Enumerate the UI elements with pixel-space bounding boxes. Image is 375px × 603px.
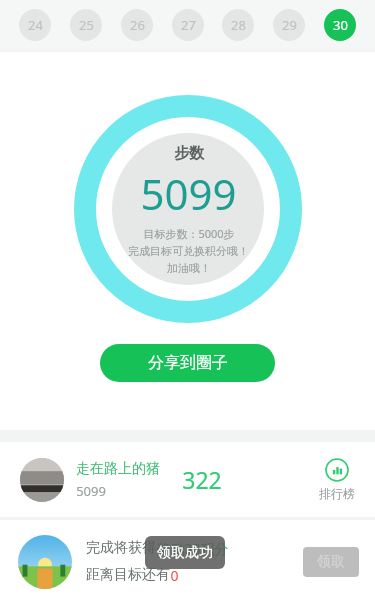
button[interactable]: 领取	[303, 547, 359, 577]
staticText: 5099	[140, 165, 237, 222]
button[interactable]: 26	[121, 9, 153, 41]
button[interactable]: 完成将获得	[0, 520, 375, 603]
button[interactable]: 29	[273, 9, 305, 41]
staticText: 26	[130, 16, 145, 34]
button[interactable]: 分享到圈子	[100, 344, 275, 382]
staticText: 目标步数：5000步	[143, 226, 235, 241]
staticText: 加油哦！	[167, 261, 211, 275]
staticText: 322	[182, 464, 222, 495]
staticText: 27	[181, 16, 196, 34]
staticText: 奖励30积分	[156, 539, 229, 558]
staticText: 28	[231, 16, 246, 34]
button[interactable]: 28	[222, 9, 254, 41]
staticText: 完成目标可兑换积分哦！	[128, 244, 249, 258]
button[interactable]: 25	[70, 9, 102, 41]
staticText: 步数	[174, 144, 204, 163]
staticText: 走在路上的猪	[76, 460, 160, 478]
staticText: 完成将获得	[86, 539, 156, 557]
staticText: 5099	[76, 482, 106, 500]
button[interactable]: 排行榜	[319, 458, 355, 501]
staticText: 排行榜	[319, 486, 355, 501]
staticText: 29	[282, 16, 297, 34]
staticText: 领取	[317, 553, 345, 571]
staticText: 领取成功	[157, 544, 213, 562]
button[interactable]: 走在路上的猪	[0, 442, 375, 517]
staticText: 距离目标还有	[86, 566, 170, 584]
staticText: 24	[28, 16, 43, 34]
button[interactable]: 24	[19, 9, 51, 41]
staticText: 0	[170, 566, 179, 585]
staticText: 30	[333, 16, 348, 34]
button[interactable]: 27	[172, 9, 204, 41]
staticText: 25	[79, 16, 94, 34]
button[interactable]: 30	[324, 9, 356, 41]
staticText: 分享到圈子	[148, 353, 228, 373]
